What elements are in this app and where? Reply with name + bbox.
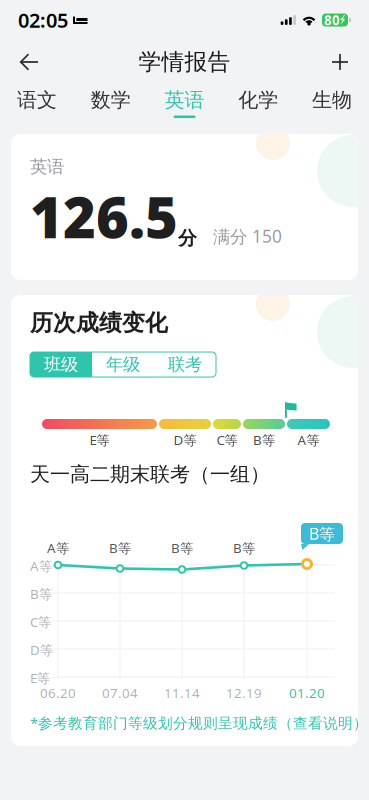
staticText: 11.14 — [164, 684, 200, 702]
staticText: 英语 — [30, 156, 64, 177]
staticText: B等 — [233, 539, 255, 557]
staticText: 班级 — [44, 354, 78, 375]
staticText: 生物 — [312, 88, 352, 112]
staticText: D等 — [173, 431, 196, 449]
staticText: 01.20 — [289, 684, 325, 702]
button[interactable]: Back — [6, 40, 52, 84]
staticText: 数学 — [91, 88, 131, 112]
staticText: 天一高二期末联考（一组） — [30, 462, 270, 487]
button[interactable]: Add — [317, 40, 363, 84]
staticText: 02:05 — [18, 7, 68, 33]
staticText: A等 — [297, 431, 319, 449]
staticText: 80 — [324, 11, 340, 29]
button[interactable]: 联考 — [154, 352, 216, 377]
staticText: 126.5 — [30, 179, 178, 254]
staticText: C等 — [216, 431, 237, 449]
button[interactable]: 数学 — [74, 88, 148, 118]
staticText: A等 — [30, 557, 52, 575]
staticText: 学情报告 — [138, 48, 230, 76]
staticText: 06.20 — [40, 684, 76, 702]
button[interactable]: 班级 — [30, 352, 92, 377]
staticText: D等 — [30, 641, 53, 659]
staticText: A等 — [47, 539, 69, 557]
staticText: E等 — [30, 669, 50, 687]
button[interactable]: 英语 — [148, 88, 221, 118]
staticText: 12.19 — [226, 684, 262, 702]
staticText: 年级 — [106, 354, 140, 375]
staticText: B等 — [30, 585, 52, 603]
staticText: E等 — [89, 431, 109, 449]
staticText: B等 — [171, 539, 193, 557]
staticText: 满分 150 — [213, 225, 282, 248]
button[interactable]: 语文 — [0, 88, 74, 118]
staticText: *参考教育部门等级划分规则呈现成绩（查看说明） — [30, 713, 368, 732]
staticText: B等 — [109, 539, 131, 557]
staticText: B等 — [309, 523, 335, 544]
button[interactable]: 生物 — [295, 88, 369, 118]
staticText: 07.04 — [102, 684, 138, 702]
staticText: 历次成绩变化 — [30, 309, 168, 337]
staticText: 语文 — [17, 88, 57, 112]
staticText: C等 — [30, 613, 51, 631]
button[interactable]: 化学 — [221, 88, 295, 118]
staticText: 分 — [178, 227, 197, 250]
staticText: 联考 — [168, 354, 202, 375]
staticText: 英语 — [164, 88, 204, 112]
staticText: B等 — [253, 431, 275, 449]
staticText: 化学 — [238, 88, 278, 112]
button[interactable]: 年级 — [92, 352, 154, 377]
